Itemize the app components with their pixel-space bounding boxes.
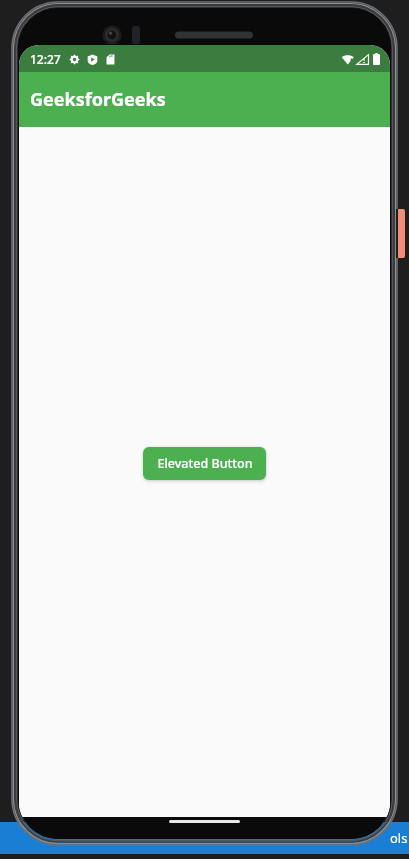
button[interactable]: Elevated Button — [143, 447, 266, 480]
staticText: GeeksforGeeks — [30, 87, 166, 112]
staticText: Elevated Button — [157, 455, 253, 472]
staticText: 12:27 — [30, 51, 61, 67]
staticText: ols — [390, 829, 408, 847]
